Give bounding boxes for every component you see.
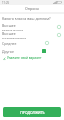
button[interactable]: Другое [0, 47, 64, 55]
staticText: Высшее техническое [2, 23, 29, 31]
staticText: 11:25 [2, 1, 10, 5]
other: Укажите свой вариант [3, 57, 6, 60]
button[interactable]: Укажите свой вариант [0, 55, 64, 63]
staticText: ПРОДОЛЖИТЬ [20, 110, 45, 115]
staticText: Высшее гуманитарное [2, 31, 29, 39]
button[interactable]: Высшее гуманитарное [0, 31, 64, 39]
staticText: Среднее [2, 41, 17, 46]
button[interactable]: Высшее техническое [0, 23, 64, 31]
staticText: Опросы [25, 6, 39, 11]
staticText: Какого класса ваш диплом? [2, 16, 51, 21]
staticText: Другое [2, 49, 14, 54]
button[interactable]: Среднее [0, 39, 64, 47]
button[interactable]: ПРОДОЛЖИТЬ [3, 107, 61, 117]
staticText: Укажите свой вариант [7, 56, 42, 60]
